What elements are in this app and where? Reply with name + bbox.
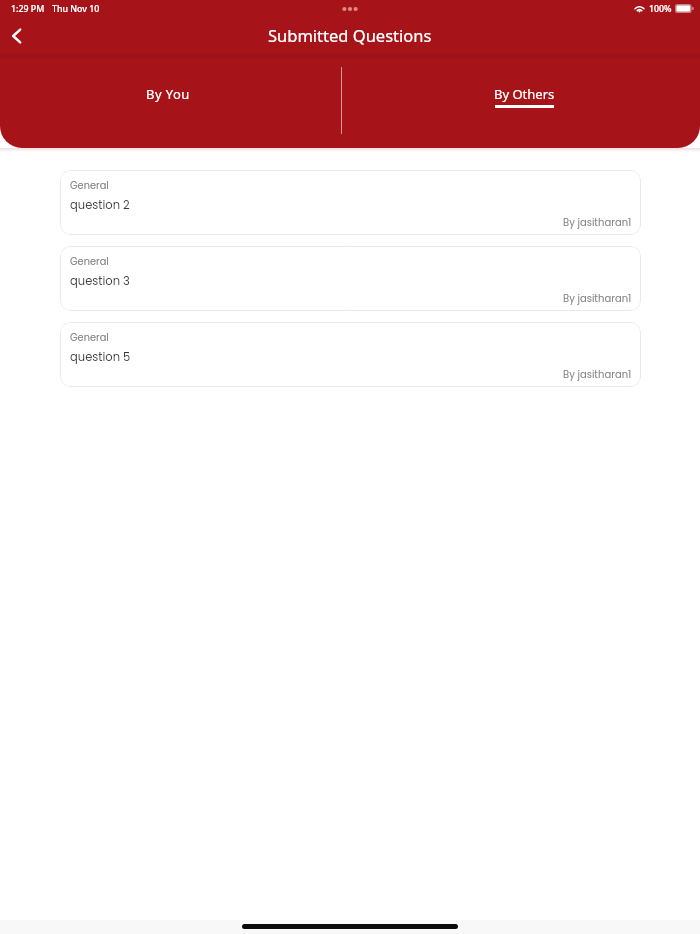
staticText: General	[70, 331, 109, 345]
button[interactable]: Back	[0, 19, 34, 53]
staticText: By Others	[494, 85, 555, 103]
staticText: 100%	[649, 3, 672, 15]
staticText: General	[70, 179, 109, 193]
staticText: question 2	[70, 197, 130, 213]
staticText: question 3	[70, 273, 130, 289]
staticText: question 5	[70, 349, 131, 365]
staticText: 1:29 PM	[11, 3, 45, 15]
button[interactable]: By You	[0, 60, 350, 142]
staticText: By You	[146, 85, 190, 103]
button[interactable]: By Others	[350, 60, 700, 142]
staticText: By jasitharan1	[563, 215, 632, 229]
staticText: Thu Nov 10	[52, 3, 100, 15]
button[interactable]: General	[60, 246, 641, 311]
staticText: Submitted Questions	[268, 24, 432, 46]
staticText: By jasitharan1	[563, 367, 632, 381]
button[interactable]: General	[60, 170, 641, 235]
button[interactable]: General	[60, 322, 641, 387]
staticText: General	[70, 255, 109, 269]
staticText: By jasitharan1	[563, 291, 632, 305]
